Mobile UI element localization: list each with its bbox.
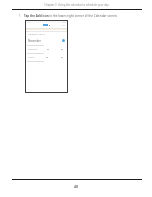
button[interactable]: All-day (26, 53, 67, 61)
staticText: THURSDAY, NOV 12 (28, 33, 46, 36)
staticText: Chapter 3 Using the calendar to schedule… (44, 3, 109, 7)
button[interactable]: Menu (26, 23, 67, 27)
button[interactable]: Add event (62, 39, 65, 42)
staticText: Tap the Add icon in the lower-right corn… (24, 14, 118, 18)
staticText: Reminder (28, 48, 38, 51)
staticText: All-day (28, 56, 35, 59)
button[interactable]: Reminder (26, 45, 67, 53)
staticText: November (28, 39, 41, 42)
staticText: 1 (19, 14, 21, 18)
staticText: 40 (74, 184, 78, 189)
staticText: 9:41 (27, 21, 31, 23)
